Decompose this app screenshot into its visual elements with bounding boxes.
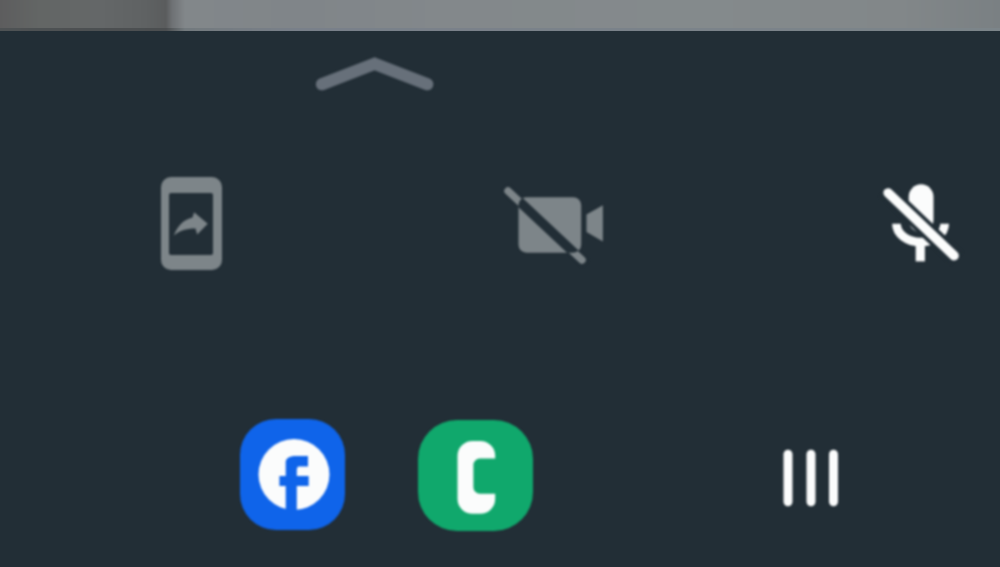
button[interactable]: Recent apps: [775, 440, 847, 520]
button[interactable]: Expand call controls: [306, 46, 444, 102]
button[interactable]: Phone: [418, 420, 533, 531]
button[interactable]: Share screen: [150, 168, 240, 280]
button[interactable]: Facebook: [240, 419, 345, 530]
button[interactable]: Turn camera on: [500, 182, 610, 270]
button[interactable]: Unmute microphone: [885, 180, 963, 270]
